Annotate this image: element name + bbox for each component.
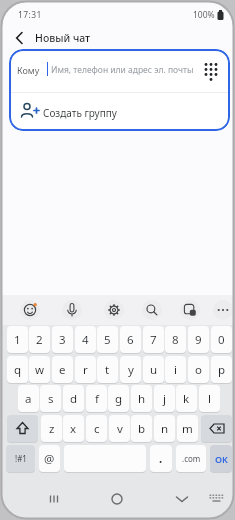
button[interactable]: 7 <box>143 326 164 353</box>
button[interactable]: OK <box>210 445 232 472</box>
button[interactable]: t <box>97 356 118 383</box>
button[interactable]: k <box>176 385 197 412</box>
staticText: v <box>117 421 123 437</box>
staticText: 4 <box>82 332 89 348</box>
button[interactable]: f <box>86 385 107 412</box>
button[interactable] <box>138 296 166 324</box>
staticText: n <box>161 421 169 437</box>
button[interactable]: 8 <box>165 326 186 353</box>
staticText: 9 <box>195 332 202 348</box>
staticText: b <box>138 421 146 437</box>
button[interactable]: h <box>131 385 152 412</box>
staticText: .com <box>182 453 201 464</box>
button[interactable]: e <box>52 356 73 383</box>
staticText: Кому <box>17 64 40 76</box>
staticText: z <box>49 421 55 437</box>
button[interactable]: u <box>143 356 164 383</box>
button[interactable]: .com <box>176 445 206 472</box>
staticText: w <box>35 362 45 378</box>
button[interactable]: 6 <box>120 326 141 353</box>
staticText: h <box>138 391 146 407</box>
staticText: s <box>48 391 54 407</box>
staticText: t <box>105 362 110 378</box>
staticText: 17:31 <box>18 9 42 21</box>
staticText: . <box>159 451 163 467</box>
button[interactable]: Создать группу <box>9 93 230 131</box>
button[interactable]: n <box>154 415 175 442</box>
button[interactable]: l <box>199 385 220 412</box>
button[interactable]: @ <box>39 445 60 472</box>
button[interactable]: !#1 <box>6 445 35 472</box>
button[interactable] <box>58 296 86 324</box>
button[interactable] <box>176 296 204 324</box>
button[interactable]: c <box>86 415 107 442</box>
staticText: u <box>150 362 158 378</box>
button[interactable] <box>199 58 223 84</box>
button[interactable]: o <box>188 356 209 383</box>
button[interactable]: 4 <box>75 326 96 353</box>
staticText: e <box>59 362 66 378</box>
button[interactable]: i <box>165 356 186 383</box>
button[interactable]: z <box>41 415 62 442</box>
button[interactable]: q <box>7 356 28 383</box>
staticText: Имя, телефон или адрес эл. почты <box>51 64 194 76</box>
button[interactable]: v <box>109 415 130 442</box>
button[interactable]: d <box>63 385 84 412</box>
button[interactable]: j <box>154 385 175 412</box>
staticText: q <box>14 362 22 378</box>
button[interactable]: 0 <box>211 326 232 353</box>
button[interactable] <box>7 415 38 442</box>
staticText: x <box>70 421 77 437</box>
staticText: k <box>183 391 190 407</box>
staticText: j <box>163 391 166 407</box>
button[interactable] <box>40 485 68 513</box>
button[interactable]: 5 <box>97 326 118 353</box>
button[interactable]: 2 <box>29 326 50 353</box>
button[interactable] <box>16 296 44 324</box>
staticText: 1 <box>14 332 21 348</box>
button[interactable]: Кому <box>9 49 230 92</box>
staticText: i <box>174 362 177 378</box>
button[interactable]: w <box>29 356 50 383</box>
button[interactable]: 9 <box>188 326 209 353</box>
staticText: !#1 <box>15 453 27 464</box>
button[interactable] <box>201 415 232 442</box>
staticText: m <box>182 421 193 437</box>
staticText: 0 <box>218 332 225 348</box>
button[interactable]: r <box>75 356 96 383</box>
button[interactable] <box>8 29 30 47</box>
button[interactable] <box>100 296 128 324</box>
staticText: g <box>115 391 123 407</box>
staticText: 2 <box>36 332 43 348</box>
button[interactable]: y <box>120 356 141 383</box>
button[interactable]: 1 <box>7 326 28 353</box>
staticText: f <box>95 391 99 407</box>
staticText: 5 <box>104 332 111 348</box>
button[interactable]: s <box>40 385 61 412</box>
button[interactable]: 3 <box>52 326 73 353</box>
staticText: Создать группу <box>43 106 117 120</box>
button[interactable]: p <box>211 356 232 383</box>
button[interactable]: . <box>150 445 172 472</box>
staticText: l <box>208 391 211 407</box>
staticText: d <box>70 391 78 407</box>
button[interactable]: x <box>63 415 84 442</box>
staticText: 6 <box>127 332 134 348</box>
staticText: c <box>94 421 100 437</box>
staticText: 7 <box>150 332 157 348</box>
button[interactable]: a <box>18 385 39 412</box>
button[interactable]: b <box>131 415 152 442</box>
staticText: Новый чат <box>35 31 91 45</box>
staticText: o <box>195 362 202 378</box>
button[interactable]: g <box>108 385 129 412</box>
button[interactable] <box>103 485 131 513</box>
button[interactable] <box>209 296 233 324</box>
button[interactable]: m <box>177 415 198 442</box>
staticText: r <box>83 362 88 378</box>
button[interactable] <box>168 485 196 513</box>
staticText: @ <box>44 451 55 467</box>
staticText: p <box>218 362 226 378</box>
staticText: 100% <box>193 9 215 21</box>
staticText: y <box>128 362 134 378</box>
